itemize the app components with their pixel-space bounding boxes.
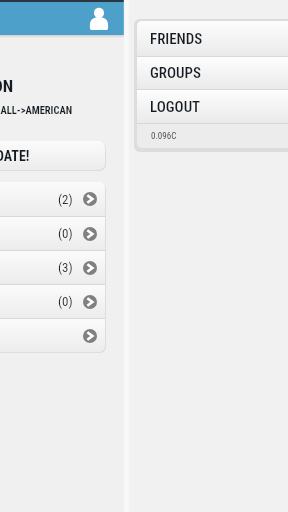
staticText: LOGOUT (150, 98, 201, 116)
button[interactable]: PLAYERS (0, 182, 105, 216)
staticText: UPDATE! (0, 148, 30, 164)
staticText: (0) (58, 294, 73, 309)
staticText: BASKETBALL->AMERICAN (0, 104, 73, 116)
button[interactable]: EVENTS (0, 285, 105, 318)
button[interactable]: LOGOUT (137, 90, 288, 123)
staticText: FRIENDS (150, 30, 203, 48)
staticText: 0.096C (151, 131, 177, 142)
button[interactable]: Account (88, 6, 110, 32)
button[interactable]: FRIENDS (137, 21, 288, 56)
staticText: (2) (58, 192, 73, 207)
button[interactable]: UPDATE! (0, 141, 105, 170)
button[interactable]: GROUPS (137, 57, 288, 89)
button[interactable]: TEAMS (0, 217, 105, 250)
button[interactable]: SETTINGS (0, 319, 105, 352)
staticText: (3) (58, 260, 73, 275)
staticText: COMPETITION (0, 76, 14, 96)
button[interactable]: MATCHES (0, 251, 105, 284)
staticText: GROUPS (150, 64, 201, 82)
staticText: (0) (58, 226, 73, 241)
